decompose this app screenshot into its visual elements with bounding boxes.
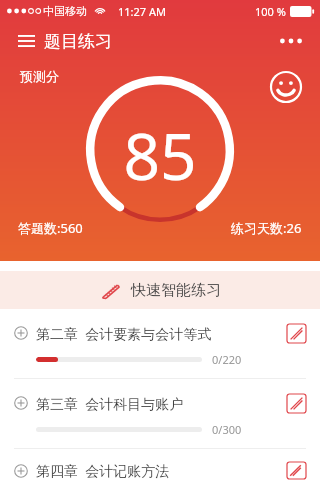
button[interactable]: Menu	[14, 29, 38, 53]
staticText: 题目练习	[44, 31, 112, 52]
staticText: 第二章 会计要素与会计等式	[36, 324, 284, 343]
button[interactable]: 第二章 会计要素与会计等式	[0, 309, 320, 379]
staticText: 11:27 AM	[118, 4, 166, 19]
button[interactable]: 快速智能练习	[0, 271, 320, 309]
button[interactable]: Mood	[269, 70, 303, 104]
staticText: 快速智能练习	[131, 281, 221, 300]
staticText: 第四章 会计记账方法	[36, 461, 284, 480]
staticText: 100 %	[255, 4, 286, 19]
staticText: 85	[123, 112, 197, 199]
staticText: 0/300	[212, 422, 242, 437]
button[interactable]: 第四章 会计记账方法	[0, 449, 320, 480]
staticText: 中国移动	[43, 4, 87, 18]
staticText: 预测分	[20, 68, 59, 84]
staticText: 练习天数:26	[231, 219, 302, 237]
button[interactable]: Practice chapter	[284, 461, 308, 480]
button[interactable]: Practice chapter	[284, 321, 308, 345]
button[interactable]: 第三章 会计科目与账户	[0, 379, 320, 449]
button[interactable]: Practice chapter	[284, 391, 308, 415]
staticText: 答题数:560	[18, 219, 83, 237]
staticText: 第三章 会计科目与账户	[36, 394, 284, 413]
button[interactable]: More options	[276, 29, 306, 53]
staticText: 0/220	[212, 352, 242, 367]
